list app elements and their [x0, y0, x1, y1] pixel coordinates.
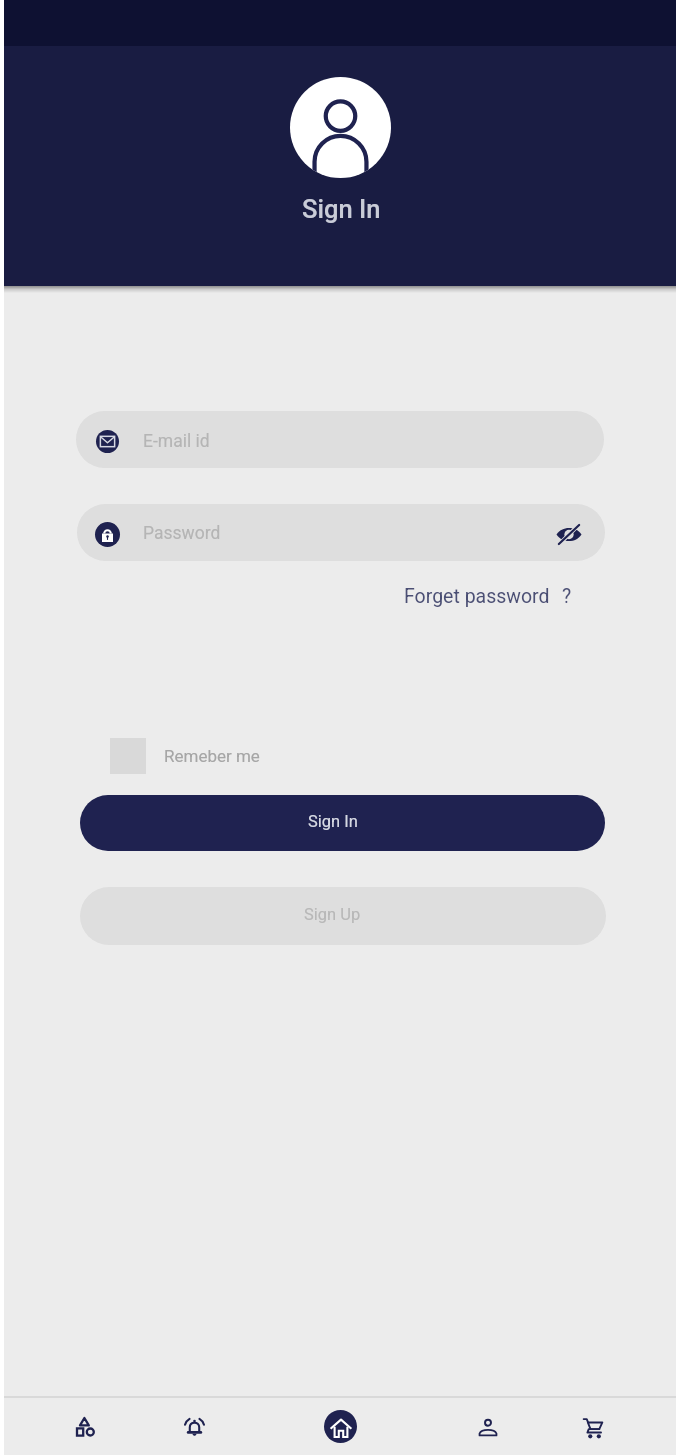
button[interactable]: Categories: [64, 1406, 106, 1448]
staticText: Sign In: [308, 812, 358, 831]
button[interactable]: Sign Up: [80, 887, 606, 945]
staticText: E-mail id: [143, 431, 210, 452]
staticText: Forget password: [404, 585, 550, 608]
button[interactable]: E-mail id: [76, 411, 604, 468]
button[interactable]: Remeber me: [110, 738, 260, 774]
button[interactable]: Show password: [546, 510, 592, 556]
button[interactable]: Cart: [573, 1406, 615, 1448]
staticText: Remeber me: [164, 746, 260, 766]
staticText: Password: [143, 523, 221, 544]
button[interactable]: Profile: [467, 1406, 509, 1448]
button[interactable]: Notifications: [173, 1406, 215, 1448]
staticText: Sign In: [302, 194, 381, 224]
button[interactable]: Sign In: [80, 795, 605, 851]
button[interactable]: Home: [324, 1410, 357, 1443]
button[interactable]: Password: [77, 504, 605, 561]
staticText: ?: [562, 585, 572, 608]
staticText: Sign Up: [304, 905, 361, 924]
button[interactable]: Forget password: [398, 581, 578, 612]
